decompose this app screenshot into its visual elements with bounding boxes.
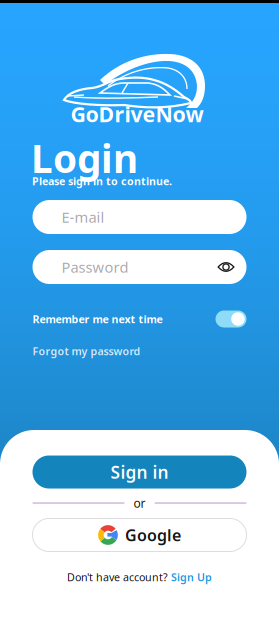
staticText: Forgot my password [32, 344, 140, 358]
staticText: Password [61, 257, 128, 277]
button[interactable]: Google [32, 518, 246, 551]
staticText: Sign in [110, 460, 168, 483]
button[interactable]: Remember me next time [215, 310, 246, 327]
button[interactable]: Show password [217, 261, 234, 273]
staticText: GoDriveNow [70, 100, 203, 128]
button[interactable]: Sign Up [171, 570, 212, 584]
staticText: Please sign in to continue. [32, 174, 172, 188]
staticText: Sign Up [171, 570, 212, 584]
staticText: Google [125, 524, 181, 546]
staticText: Don't have account? [67, 570, 168, 584]
button[interactable]: Forgot my password [32, 344, 140, 358]
button[interactable]: Sign in [32, 455, 246, 488]
staticText: E-mail [61, 207, 104, 227]
staticText: Login [31, 132, 138, 184]
staticText: or [133, 495, 145, 511]
staticText: Remember me next time [32, 312, 162, 326]
